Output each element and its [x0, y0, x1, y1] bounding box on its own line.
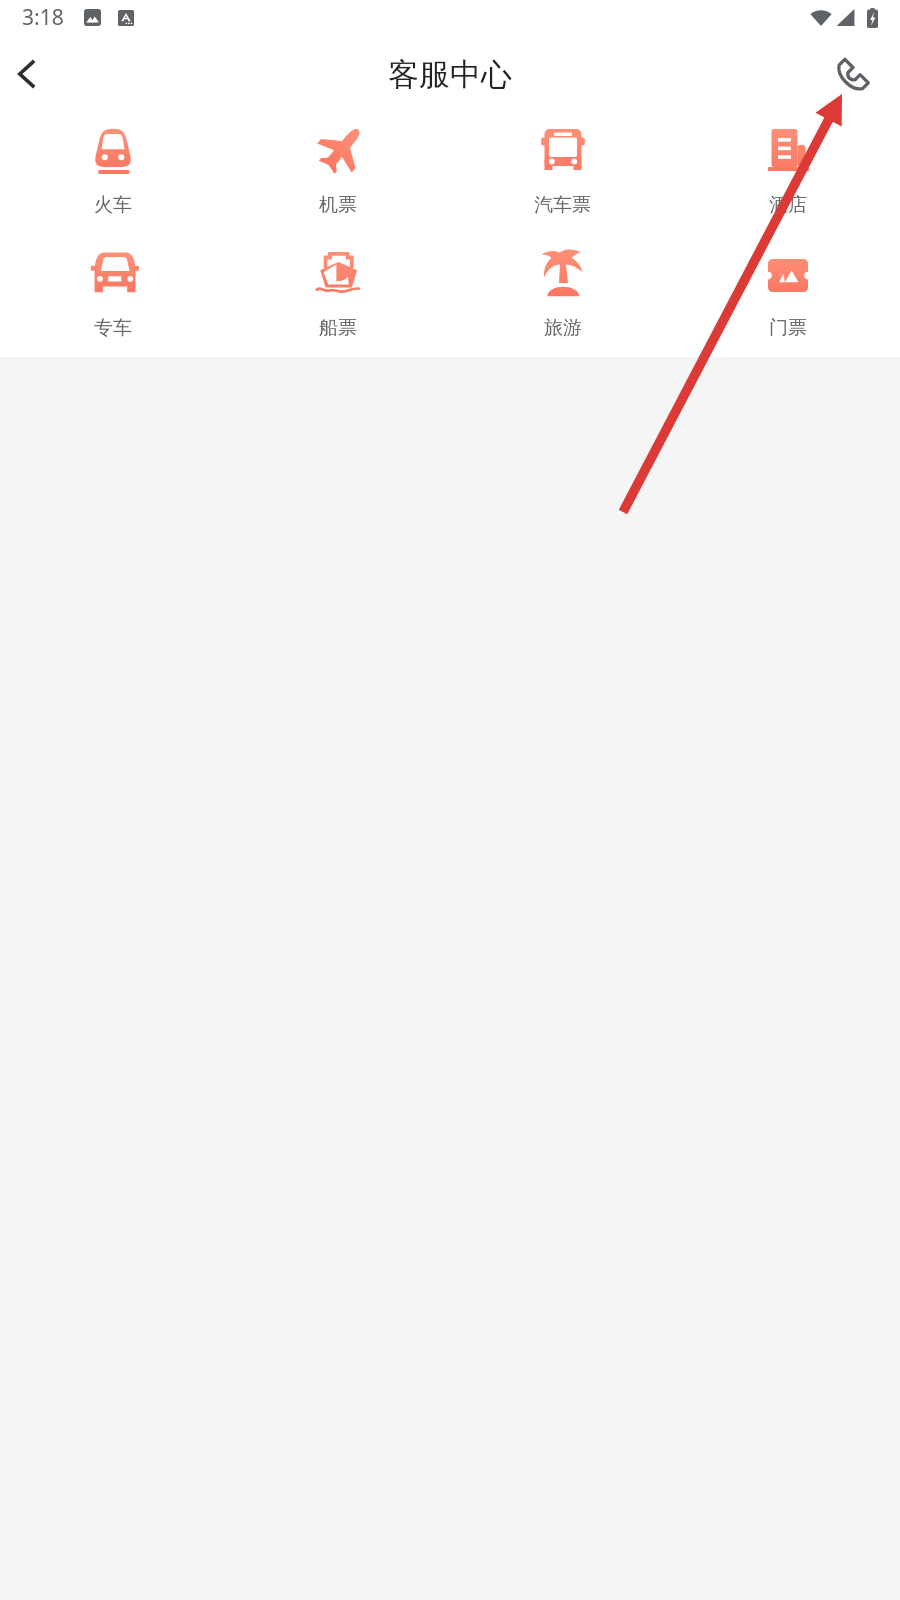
button[interactable]: 船票	[225, 247, 450, 346]
staticText: 火车	[94, 193, 132, 217]
button[interactable]: 汽车票	[450, 112, 675, 223]
staticText: 门票	[769, 316, 807, 340]
staticText: 专车	[94, 316, 132, 340]
staticText: 3:18	[22, 3, 64, 32]
staticText: 客服中心	[388, 55, 512, 94]
staticText: 机票	[319, 193, 357, 217]
button[interactable]: 专车	[0, 247, 225, 346]
staticText: 酒店	[769, 193, 807, 217]
button[interactable]: 酒店	[675, 112, 900, 223]
button[interactable]: Call customer service	[825, 46, 881, 102]
staticText: 船票	[319, 316, 357, 340]
button[interactable]: 门票	[675, 247, 900, 346]
button[interactable]: 机票	[225, 112, 450, 223]
staticText: 旅游	[544, 316, 582, 340]
button[interactable]: 火车	[0, 112, 225, 223]
staticText: 汽车票	[534, 193, 591, 217]
button[interactable]: 旅游	[450, 247, 675, 346]
button[interactable]: Back	[0, 43, 58, 105]
